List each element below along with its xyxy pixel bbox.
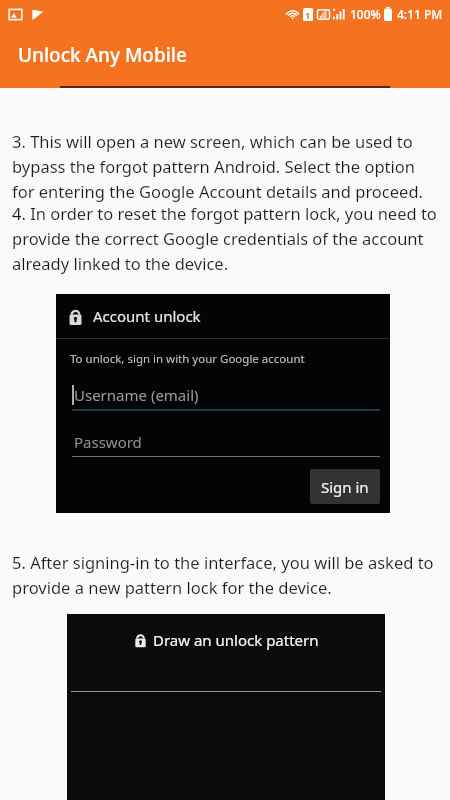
button[interactable]: Draw an unlock pattern — [67, 614, 385, 800]
staticText: To unlock, sign in with your Google acco… — [70, 351, 305, 367]
staticText: 4:11 PM — [397, 6, 443, 22]
staticText: Unlock Any Mobile — [18, 42, 187, 68]
staticText: 5. After signing-in to the interface, yo… — [12, 551, 438, 598]
button[interactable]: Account unlock — [56, 294, 390, 513]
button[interactable]: Sign in — [310, 469, 380, 504]
button[interactable]: Password — [72, 427, 380, 457]
staticText: 100% — [350, 6, 381, 22]
staticText: 1 — [305, 9, 311, 21]
staticText: Username (email) — [74, 385, 199, 405]
staticText: 4. In order to reset the forgot pattern … — [12, 202, 438, 274]
staticText: Password — [74, 432, 142, 452]
staticText: Sign in — [321, 477, 369, 497]
staticText: 3. This will open a new screen, which ca… — [12, 130, 438, 202]
button[interactable]: Username (email) — [72, 379, 380, 411]
staticText: Account unlock — [93, 306, 201, 326]
staticText: Draw an unlock pattern — [153, 630, 319, 650]
